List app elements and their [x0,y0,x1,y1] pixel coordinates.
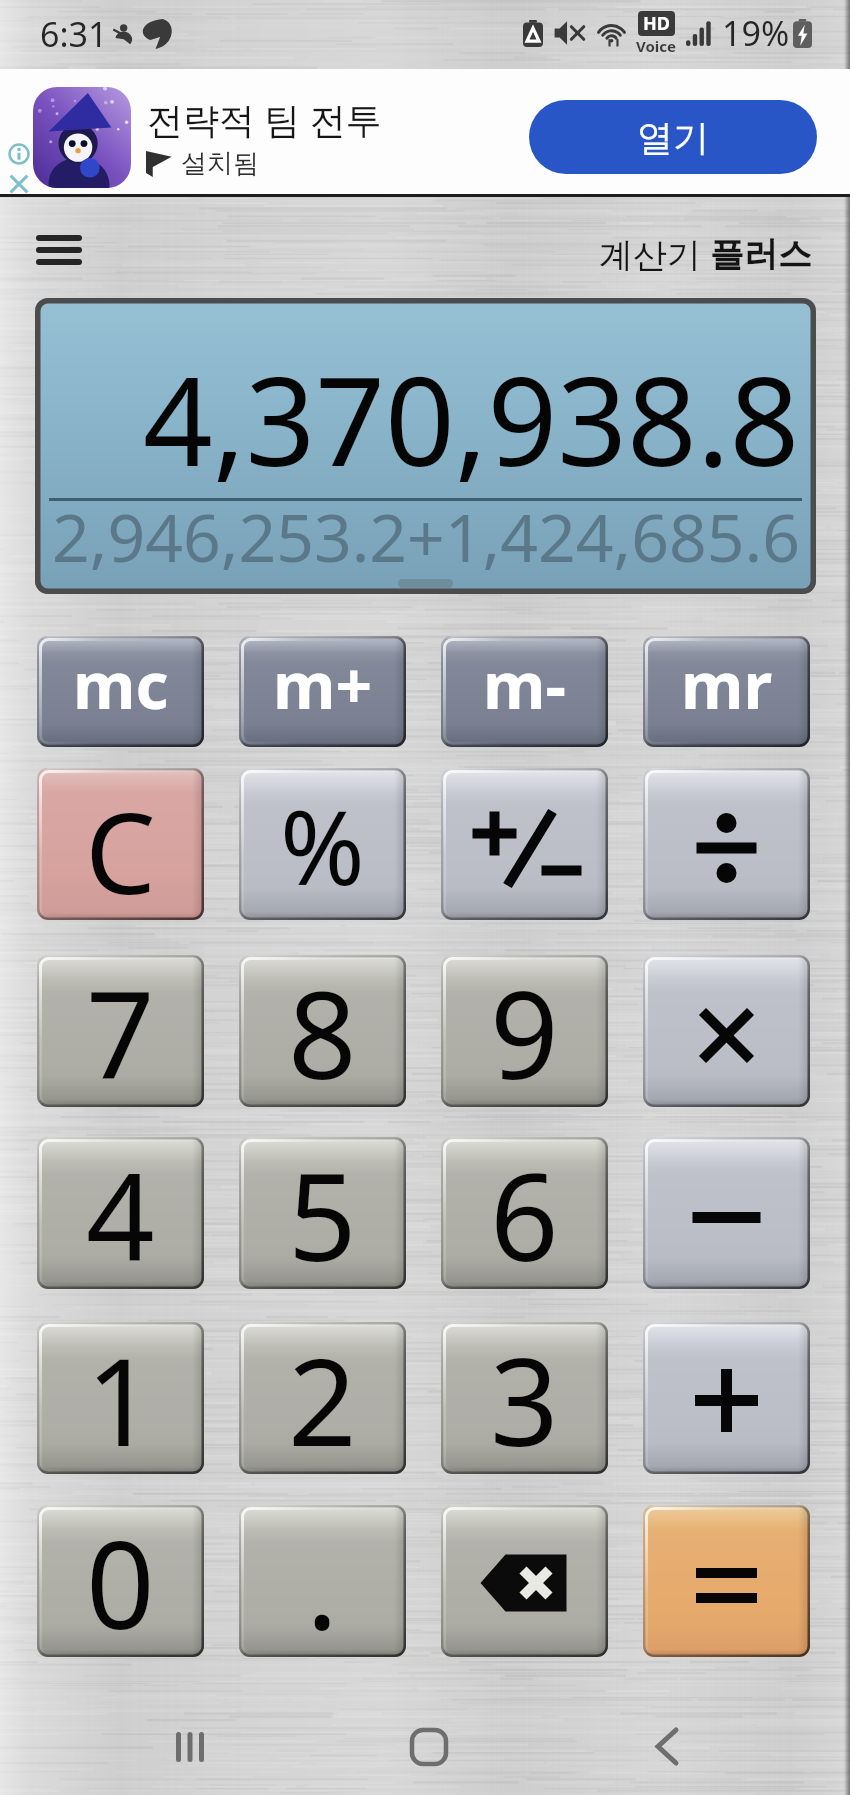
staticText: 설치됨 [181,147,259,180]
staticText: 전략적 팀 전투 [147,95,382,144]
button[interactable]: mc [37,636,204,747]
button[interactable]: Plus [643,1322,810,1474]
button[interactable]: 5 [239,1137,406,1289]
button[interactable]: Backspace [441,1505,608,1657]
staticText: 2,946,253.2+1,424,685.6 [52,491,800,581]
button[interactable]: Minus [643,1137,810,1289]
staticText: m- [483,641,566,728]
staticText: 9 [490,955,559,1103]
button[interactable]: 4,370,938.8 [35,298,816,594]
button[interactable]: C [37,768,204,920]
staticText: mc [73,641,169,728]
button[interactable]: Recents [110,1698,270,1795]
staticText: 4,370,938.8 [143,336,800,502]
button[interactable]: Back [587,1698,747,1795]
button[interactable]: 4 [37,1137,204,1289]
button[interactable]: m+ [239,636,406,747]
staticText: Voice [636,36,677,56]
button[interactable]: Plus minus [441,768,608,920]
button[interactable]: 열기 [529,100,817,174]
button[interactable]: 6 [441,1137,608,1289]
button[interactable]: . [239,1505,406,1657]
button[interactable]: Divide [643,768,810,920]
button[interactable]: 8 [239,955,406,1107]
staticText: 7 [86,955,155,1103]
staticText: 8 [288,955,357,1103]
staticText: HD [643,11,670,36]
staticText: . [306,1505,339,1653]
staticText: 2 [288,1322,357,1470]
staticText: 6:31 [40,11,108,57]
staticText: 계산기 [599,231,710,277]
button[interactable]: 9 [441,955,608,1107]
button[interactable]: 2 [239,1322,406,1474]
button[interactable]: 0 [37,1505,204,1657]
button[interactable]: 3 [441,1322,608,1474]
staticText: 19% [722,10,790,56]
button[interactable]: m- [441,636,608,747]
staticText: 3 [490,1322,559,1470]
button[interactable]: Menu [30,222,88,278]
staticText: 4 [86,1137,155,1285]
staticText: 플러스 [710,233,812,276]
button[interactable]: 1 [37,1322,204,1474]
button[interactable]: mr [643,636,810,747]
staticText: m+ [273,641,373,728]
button[interactable]: % [239,768,406,920]
staticText: 1 [86,1322,155,1470]
staticText: 0 [86,1505,155,1653]
staticText: 열기 [637,115,709,160]
staticText: 5 [288,1137,357,1285]
staticText: mr [681,641,773,728]
button[interactable]: Equals [643,1505,810,1657]
staticText: C [85,774,156,920]
button[interactable]: Multiply [643,955,810,1107]
button[interactable]: Home [349,1698,509,1795]
staticText: 6 [490,1137,559,1285]
staticText: % [280,776,365,915]
button[interactable]: 7 [37,955,204,1107]
